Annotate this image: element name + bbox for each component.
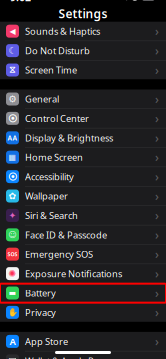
- button[interactable]: ⦿: [0, 167, 166, 186]
- staticText: ›: [155, 62, 159, 78]
- button[interactable]: ✦: [0, 206, 166, 225]
- staticText: Settings: [58, 6, 107, 22]
- staticText: ⦿: [8, 114, 17, 123]
- button[interactable]: ☾: [0, 41, 166, 60]
- staticText: ›: [155, 333, 159, 349]
- staticText: ⚙: [8, 94, 16, 104]
- staticText: Home Screen: [25, 151, 83, 163]
- staticText: ›: [155, 43, 159, 58]
- staticText: ✿: [8, 191, 16, 201]
- staticText: ⧖: [9, 65, 16, 74]
- staticText: ›: [155, 188, 159, 204]
- staticText: Screen Time: [25, 64, 77, 76]
- staticText: Exposure Notifications: [25, 267, 122, 280]
- staticText: Do Not Disturb: [25, 44, 90, 57]
- staticText: App Store: [25, 335, 68, 348]
- staticText: ›: [155, 266, 159, 281]
- staticText: Emergency SOS: [25, 248, 93, 260]
- staticText: ›: [155, 246, 159, 262]
- staticText: ✺: [8, 268, 16, 279]
- staticText: AA: [7, 133, 17, 142]
- button[interactable]: A: [0, 332, 166, 351]
- button[interactable]: AA: [0, 128, 166, 148]
- staticText: ✦: [8, 210, 16, 221]
- staticText: ▦: [8, 153, 16, 162]
- button[interactable]: ✿: [0, 186, 166, 206]
- staticText: Privacy: [25, 306, 56, 319]
- staticText: Display & Brightness: [25, 132, 113, 144]
- staticText: Control Center: [25, 112, 89, 125]
- button[interactable]: SOS: [0, 245, 166, 264]
- button[interactable]: ▤: [0, 351, 166, 359]
- staticText: Battery: [25, 287, 56, 299]
- staticText: ▬: [8, 288, 16, 298]
- staticText: Siri & Search: [25, 209, 78, 222]
- staticText: Wallpaper: [25, 190, 68, 202]
- staticText: Wallet & Apple Pay: [25, 355, 104, 359]
- button[interactable]: ⦿: [0, 109, 166, 128]
- button[interactable]: ▬: [0, 283, 166, 303]
- staticText: ›: [155, 110, 159, 126]
- button[interactable]: ⧖: [0, 60, 166, 79]
- button[interactable]: ◀: [0, 22, 166, 41]
- button[interactable]: ✺: [0, 264, 166, 283]
- staticText: ›: [155, 227, 159, 243]
- staticText: ▤: [8, 355, 17, 359]
- staticText: Accessibility: [25, 170, 74, 183]
- staticText: ☾: [8, 45, 16, 56]
- staticText: ✋: [7, 308, 17, 317]
- staticText: ⦿: [8, 172, 17, 181]
- staticText: ›: [155, 207, 159, 223]
- button[interactable]: ☺: [0, 225, 166, 245]
- button[interactable]: ▦: [0, 148, 166, 167]
- staticText: ›: [155, 149, 159, 165]
- staticText: ◀: [9, 27, 15, 36]
- staticText: ☺: [8, 230, 16, 239]
- staticText: ›: [155, 23, 159, 39]
- staticText: A: [9, 335, 15, 348]
- staticText: ›: [155, 130, 159, 146]
- staticText: ›: [155, 304, 159, 320]
- staticText: Sounds & Haptics: [25, 25, 100, 37]
- staticText: ›: [155, 169, 159, 184]
- button[interactable]: ⚙: [0, 89, 166, 109]
- staticText: 9:02: [10, 0, 31, 4]
- staticText: General: [25, 93, 59, 105]
- button[interactable]: ✋: [0, 303, 166, 322]
- staticText: ›: [155, 285, 159, 301]
- staticText: Face ID & Passcode: [25, 229, 107, 241]
- staticText: SOS: [7, 251, 17, 258]
- staticText: ›: [155, 91, 159, 107]
